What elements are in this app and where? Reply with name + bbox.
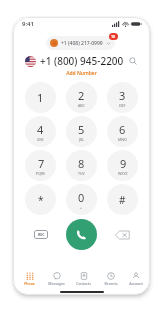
button[interactable]: Call <box>66 219 97 250</box>
button[interactable]: 1 <box>25 82 56 113</box>
staticText: GHI <box>37 137 44 142</box>
staticText: 3 <box>119 88 126 103</box>
button[interactable]: * <box>25 184 56 215</box>
button[interactable]: Delete <box>107 219 138 250</box>
button[interactable]: 7 <box>25 150 56 181</box>
button[interactable]: Phone <box>16 272 43 286</box>
staticText: Recents <box>104 281 118 286</box>
staticText: +1 (408) 217-0999 <box>61 40 103 47</box>
button[interactable]: Account <box>124 272 147 286</box>
staticText: 4 <box>37 122 44 137</box>
staticText: 2 <box>78 88 85 103</box>
staticText: WXYZ <box>118 171 128 176</box>
button[interactable]: REC <box>34 230 48 239</box>
staticText: 9:41 <box>22 20 34 28</box>
button[interactable]: Messages <box>43 272 70 286</box>
staticText: 7 <box>38 156 45 171</box>
staticText: 10 <box>111 34 116 39</box>
staticText: 9 <box>120 156 127 171</box>
staticText: +1 (800) 945-2200 <box>40 54 124 68</box>
staticText: Messages <box>48 281 65 286</box>
button[interactable]: 4 <box>25 116 56 147</box>
staticText: MNO <box>118 137 127 142</box>
staticText: TUV <box>78 171 85 176</box>
staticText: 1 <box>37 90 44 105</box>
staticText: JKL <box>79 137 85 142</box>
staticText: 8 <box>78 156 85 171</box>
staticText: 6 <box>119 122 126 137</box>
button[interactable]: Add Number <box>13 70 150 77</box>
button[interactable]: +1 (408) 217-0999 <box>46 36 115 50</box>
staticText: Contacts <box>76 281 91 286</box>
button[interactable]: Contacts <box>70 272 97 286</box>
staticText: Account <box>129 281 143 286</box>
button[interactable]: 2 <box>66 82 97 113</box>
button[interactable]: Recents <box>97 272 124 286</box>
staticText: * <box>38 193 44 207</box>
staticText: PQRS <box>36 171 46 176</box>
button[interactable]: Search <box>128 56 138 66</box>
staticText: + <box>80 205 83 210</box>
staticText: REC <box>38 232 45 237</box>
staticText: DEF <box>119 103 126 108</box>
staticText: # <box>119 193 126 207</box>
button[interactable]: 3 <box>107 82 138 113</box>
staticText: ABC <box>78 103 85 108</box>
button[interactable]: 8 <box>66 150 97 181</box>
button[interactable]: 5 <box>66 116 97 147</box>
staticText: 0 <box>78 190 85 205</box>
staticText: 5 <box>78 122 85 137</box>
button[interactable]: 6 <box>107 116 138 147</box>
staticText: Phone <box>24 281 35 286</box>
button[interactable]: 0 <box>66 184 97 215</box>
button[interactable]: 9 <box>107 150 138 181</box>
button[interactable]: # <box>107 184 138 215</box>
